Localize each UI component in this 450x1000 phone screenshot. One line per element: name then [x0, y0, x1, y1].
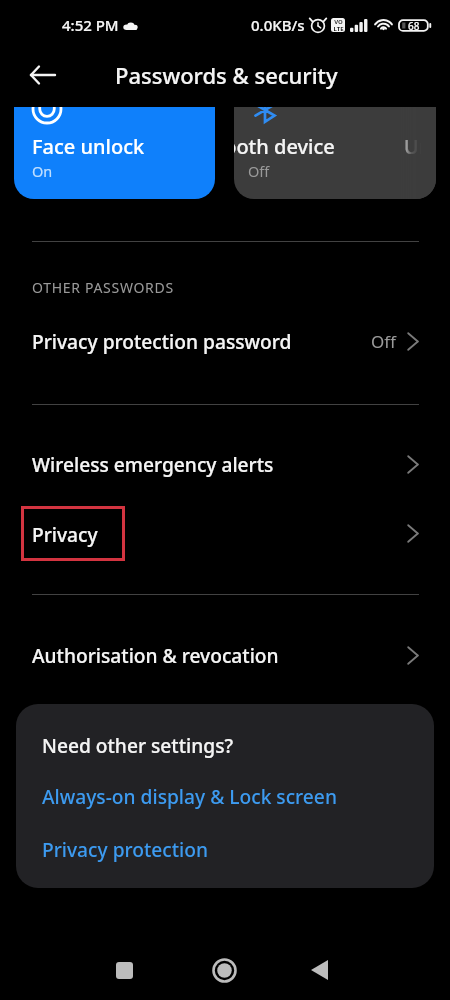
button[interactable]: Authorisation & revocation: [0, 627, 450, 683]
staticText: Need other settings?: [42, 732, 234, 758]
staticText: Authorisation & revocation: [32, 642, 279, 668]
button[interactable]: Privacy: [0, 505, 450, 561]
staticText: Unlock: [404, 133, 436, 160]
staticText: Off: [248, 161, 270, 181]
staticText: OTHER PASSWORDS: [32, 278, 174, 297]
staticText: Passwords & security: [115, 60, 338, 90]
staticText: VO LTE: [333, 18, 344, 32]
button[interactable]: Bluetooth device: [234, 107, 436, 199]
button[interactable]: Privacy protection password: [0, 313, 450, 369]
staticText: Off: [371, 330, 396, 353]
button[interactable]: Home: [200, 946, 248, 994]
staticText: Face unlock: [32, 133, 145, 160]
button[interactable]: Back: [22, 55, 62, 95]
staticText: 0.0KB/s: [251, 15, 305, 35]
button[interactable]: Face unlock: [14, 107, 215, 199]
button[interactable]: Always-on display & Lock screen: [42, 783, 337, 809]
staticText: Wireless emergency alerts: [32, 451, 274, 477]
button[interactable]: Privacy protection: [42, 836, 209, 862]
staticText: 4:52 PM: [62, 15, 119, 35]
staticText: On: [32, 161, 53, 181]
button[interactable]: Back: [295, 946, 343, 994]
staticText: Bluetooth device: [234, 133, 335, 160]
button[interactable]: Wireless emergency alerts: [0, 436, 450, 492]
button[interactable]: Recents: [100, 946, 148, 994]
staticText: Privacy protection: [42, 836, 209, 862]
staticText: Always-on display & Lock screen: [42, 783, 337, 809]
staticText: 68: [408, 19, 420, 33]
staticText: Privacy protection password: [32, 328, 292, 354]
staticText: Privacy: [32, 521, 98, 547]
